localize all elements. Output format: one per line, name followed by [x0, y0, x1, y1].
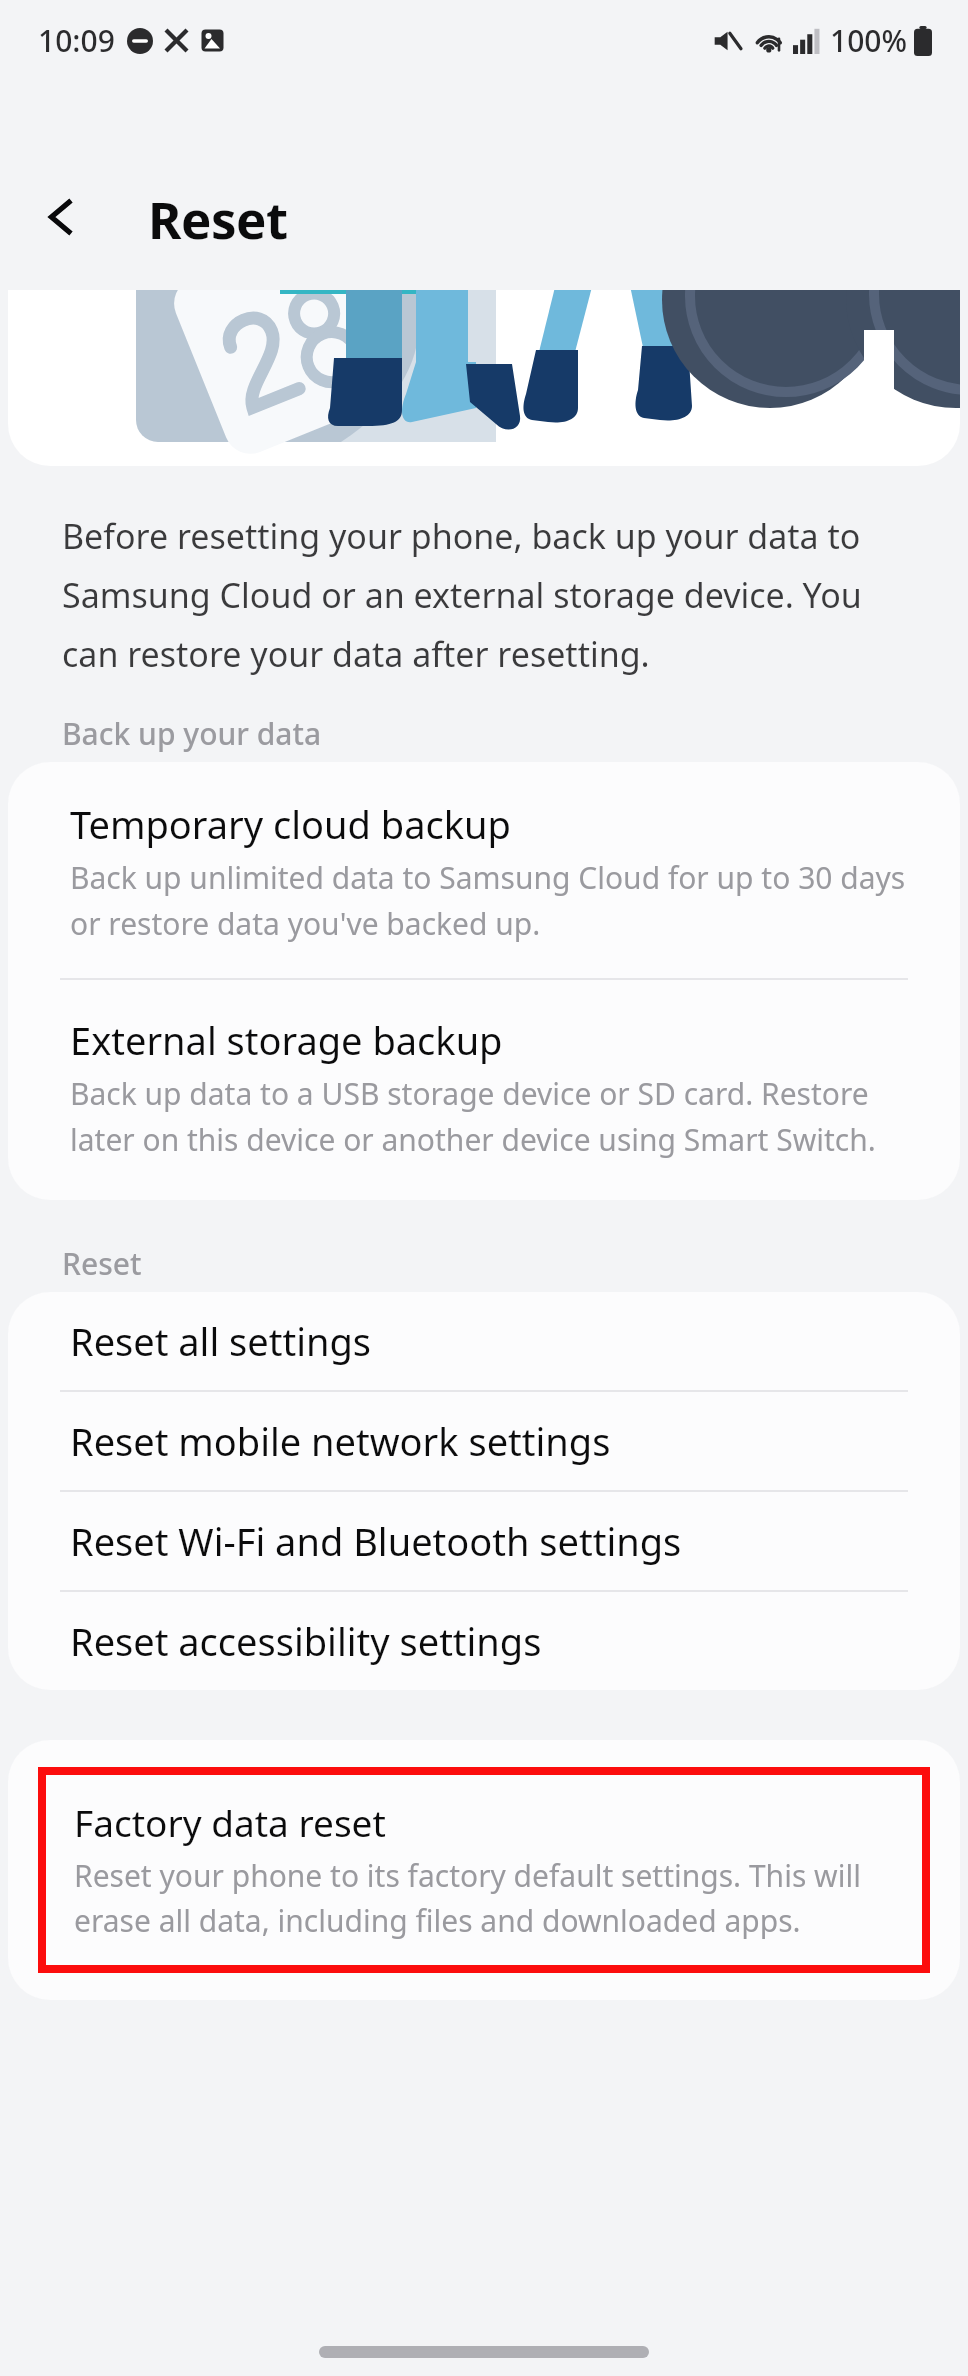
- staticText: Reset Wi-Fi and Bluetooth settings: [70, 1515, 682, 1567]
- button[interactable]: Temporary cloud backup: [8, 762, 960, 978]
- staticText: Factory data reset: [74, 1797, 386, 1847]
- button[interactable]: External storage backup: [8, 980, 960, 1200]
- staticText: Back up data to a USB storage device or …: [70, 1073, 908, 1160]
- button[interactable]: Reset mobile network settings: [8, 1392, 960, 1490]
- staticText: 10:09: [38, 20, 115, 61]
- staticText: Reset accessibility settings: [70, 1615, 542, 1667]
- button[interactable]: Reset Wi-Fi and Bluetooth settings: [8, 1492, 960, 1590]
- button[interactable]: Reset all settings: [8, 1292, 960, 1390]
- staticText: Reset: [62, 1243, 142, 1284]
- staticText: Temporary cloud backup: [70, 798, 511, 850]
- staticText: Reset your phone to its factory default …: [74, 1855, 906, 1941]
- button[interactable]: Factory data reset: [46, 1775, 922, 1965]
- staticText: Back up your data: [62, 713, 322, 754]
- staticText: 100%: [830, 20, 908, 61]
- button[interactable]: Back: [24, 180, 98, 254]
- staticText: Back up unlimited data to Samsung Cloud …: [70, 857, 908, 944]
- button[interactable]: Reset accessibility settings: [8, 1592, 960, 1690]
- staticText: Before resetting your phone, back up you…: [62, 513, 918, 677]
- staticText: Reset all settings: [70, 1315, 372, 1367]
- staticText: Reset mobile network settings: [70, 1415, 611, 1467]
- staticText: Reset: [148, 184, 288, 253]
- staticText: External storage backup: [70, 1014, 503, 1066]
